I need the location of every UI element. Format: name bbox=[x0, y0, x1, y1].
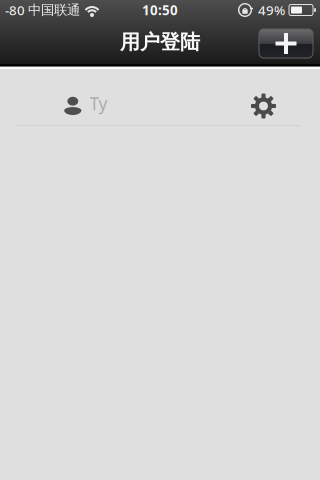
staticText: Ty bbox=[90, 92, 108, 115]
button[interactable]: Ty bbox=[0, 69, 320, 127]
staticText: 中国联通 bbox=[28, 2, 80, 18]
button[interactable]: Add bbox=[259, 29, 313, 58]
staticText: 10:50 bbox=[142, 1, 178, 19]
staticText: -80 bbox=[5, 1, 25, 19]
staticText: 49% bbox=[258, 1, 285, 19]
staticText: 用户登陆 bbox=[120, 30, 200, 54]
